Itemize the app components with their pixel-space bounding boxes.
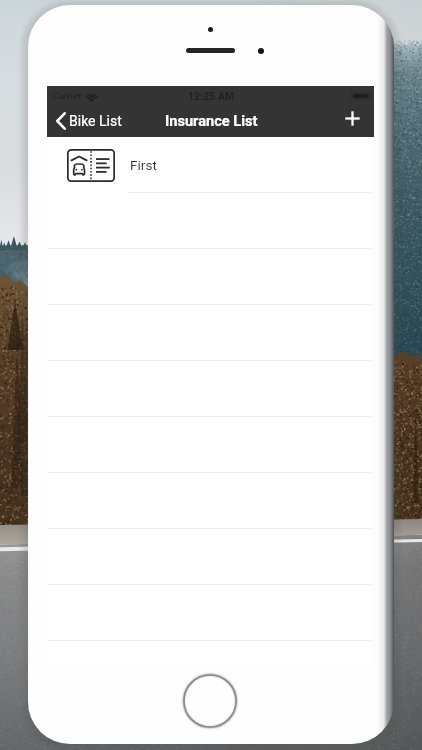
- staticText: 12:25 AM: [188, 90, 235, 102]
- button[interactable]: First: [47, 137, 374, 193]
- staticText: First: [130, 157, 157, 173]
- staticText: Insurance List: [165, 112, 258, 129]
- button[interactable]: Bike List: [47, 113, 128, 131]
- staticText: Carrier: [52, 90, 82, 102]
- staticText: Bike List: [69, 113, 122, 129]
- button[interactable]: Add: [334, 106, 374, 137]
